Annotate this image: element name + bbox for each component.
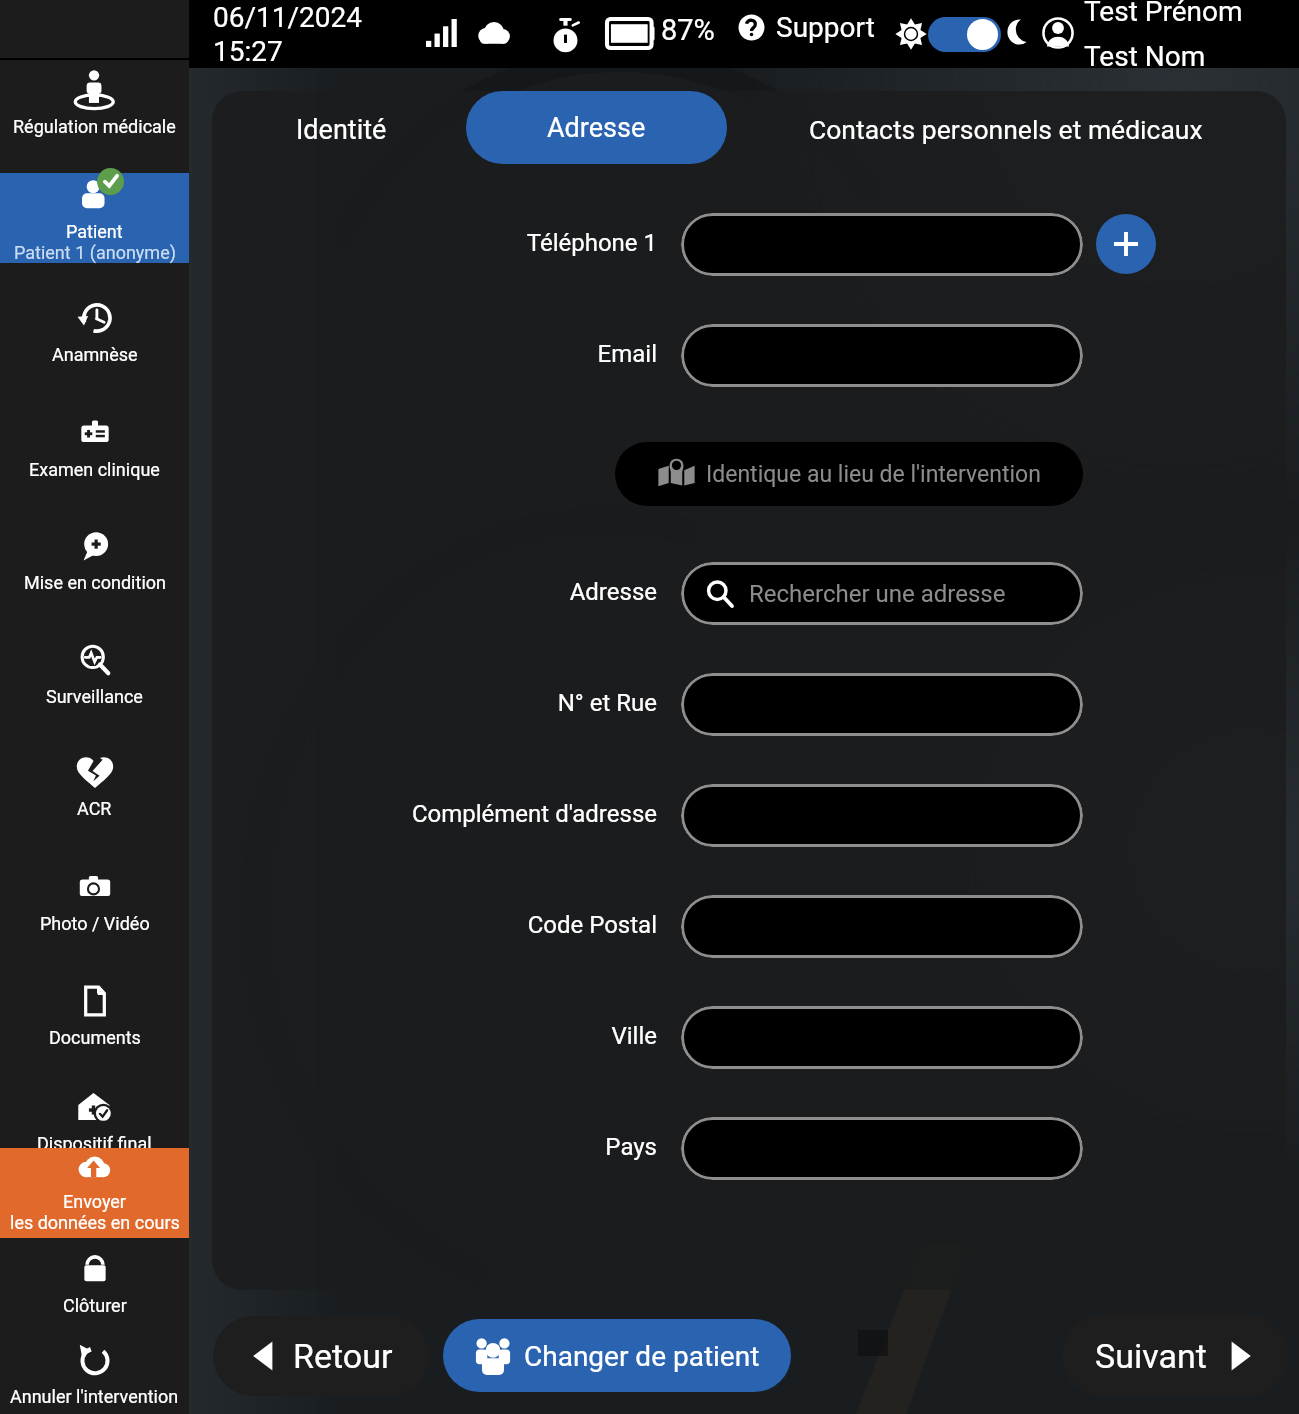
button[interactable]: ACR: [0, 753, 189, 831]
button[interactable]: Photo / Vidéo: [0, 868, 189, 946]
staticText: Adresse: [180, 578, 657, 606]
other: Signal: [425, 19, 459, 47]
button[interactable]: Identité: [280, 104, 403, 156]
button[interactable]: Rechercher une adresse: [681, 562, 1083, 625]
staticText: Suivant: [1095, 1336, 1207, 1376]
staticText: N° et Rue: [180, 689, 657, 717]
staticText: Documents: [49, 1027, 141, 1048]
staticText: Pays: [180, 1133, 657, 1161]
button[interactable]: Thème clair: [894, 17, 928, 51]
staticText: Email: [180, 340, 657, 368]
staticText: Photo / Vidéo: [40, 913, 150, 934]
button[interactable]: Contacts personnels et médicaux: [793, 104, 1219, 155]
button[interactable]: Envoyer: [0, 1148, 189, 1238]
staticText: Mise en condition: [24, 572, 166, 593]
staticText: Support: [776, 11, 875, 44]
staticText: Identique au lieu de l'intervention: [706, 461, 1041, 488]
button[interactable]: Régulation médicale: [0, 71, 189, 149]
button[interactable]: Ajouter un téléphone: [1096, 214, 1156, 274]
staticText: Clôturer: [63, 1295, 127, 1316]
button[interactable]: Adresse: [466, 91, 727, 164]
button[interactable]: Support: [738, 11, 875, 44]
staticText: 87%: [661, 13, 715, 47]
button[interactable]: Anamnèse: [0, 299, 189, 377]
button[interactable]: Retour: [213, 1316, 429, 1396]
staticText: Téléphone 1: [180, 229, 657, 257]
staticText: Code Postal: [180, 911, 657, 939]
button[interactable]: Compte: [1042, 17, 1074, 49]
staticText: Changer de patient: [524, 1340, 760, 1373]
button[interactable]: Dispositif final: [0, 1088, 189, 1166]
button[interactable]: Changer de thème: [928, 17, 1001, 52]
button[interactable]: Suivant: [1062, 1314, 1288, 1397]
button[interactable]: Mise en condition: [0, 527, 189, 605]
button[interactable]: Changer de patient: [443, 1319, 791, 1392]
staticText: Ville: [180, 1022, 657, 1050]
button[interactable]: [681, 1006, 1083, 1069]
staticText: ACR: [77, 798, 112, 819]
staticText: Identité: [296, 114, 387, 146]
other: Chronomètre: [553, 18, 579, 50]
staticText: Surveillance: [46, 686, 143, 707]
button[interactable]: [681, 324, 1083, 387]
button[interactable]: Annuler l'intervention: [0, 1341, 189, 1414]
button[interactable]: Examen clinique: [0, 414, 189, 492]
staticText: les données en cours: [10, 1212, 180, 1233]
staticText: Examen clinique: [29, 459, 160, 480]
button[interactable]: Identique au lieu de l'intervention: [615, 442, 1083, 506]
staticText: Contacts personnels et médicaux: [809, 114, 1203, 145]
button[interactable]: Thème sombre: [1005, 17, 1035, 47]
button[interactable]: Patient: [0, 173, 189, 263]
staticText: Patient 1 (anonyme): [14, 242, 176, 263]
staticText: Patient: [66, 221, 123, 242]
button[interactable]: [681, 213, 1083, 276]
button[interactable]: [681, 673, 1083, 736]
staticText: Anamnèse: [52, 344, 138, 365]
staticText: Adresse: [547, 112, 646, 144]
button[interactable]: [681, 1117, 1083, 1180]
button[interactable]: [681, 895, 1083, 958]
button[interactable]: Test Prénom Test Nom: [1084, 0, 1243, 72]
staticText: Envoyer: [63, 1191, 126, 1212]
staticText: Annuler l'intervention: [10, 1386, 179, 1407]
staticText: Dispositif final: [37, 1133, 152, 1154]
staticText: Régulation médicale: [13, 116, 176, 137]
staticText: Complément d'adresse: [180, 800, 657, 828]
button[interactable]: [681, 784, 1083, 847]
staticText: Rechercher une adresse: [749, 580, 1006, 608]
staticText: Retour: [293, 1336, 393, 1376]
button[interactable]: Documents: [0, 982, 189, 1060]
button[interactable]: Surveillance: [0, 641, 189, 719]
button[interactable]: Clôturer: [0, 1250, 189, 1328]
staticText: 06/11/2024 15:27: [213, 1, 362, 68]
other: Connexion: [476, 19, 512, 47]
other: Batterie: [607, 19, 656, 48]
